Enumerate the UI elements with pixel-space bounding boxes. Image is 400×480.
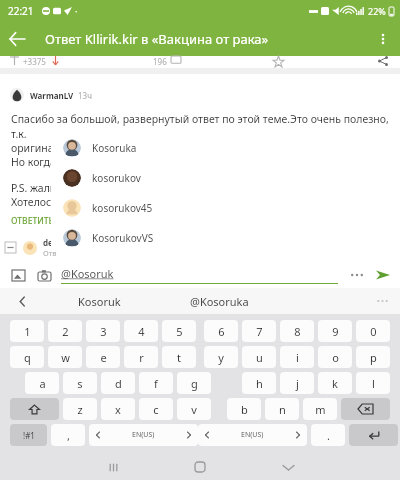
button[interactable]: l [356, 372, 390, 394]
button[interactable]: . [311, 424, 345, 446]
staticText: c [153, 402, 159, 417]
staticText: k [332, 376, 338, 391]
button[interactable]: p [356, 346, 390, 368]
button[interactable]: h [242, 372, 276, 394]
button[interactable]: Camera [34, 265, 54, 285]
button[interactable]: 1 [10, 320, 44, 342]
staticText: kosorukov45 [92, 201, 153, 215]
button[interactable]: m [303, 398, 337, 420]
staticText: d [115, 376, 122, 391]
staticText: Ответ Kllirik.kir в «Вакцина от рака» [45, 30, 366, 48]
button[interactable]: More [346, 264, 368, 286]
button[interactable]: v [177, 398, 211, 420]
staticText: Но когда [11, 155, 56, 169]
button[interactable]: Home [185, 454, 215, 480]
staticText: deril [43, 237, 62, 248]
button[interactable]: 5 [162, 320, 196, 342]
button[interactable]: Comments [153, 56, 181, 67]
staticText: P.S. жаль [11, 181, 56, 195]
button[interactable]: i [280, 346, 314, 368]
staticText: i [296, 350, 299, 365]
staticText: y [218, 350, 224, 365]
button[interactable]: r [124, 346, 158, 368]
button[interactable]: !#1 [10, 424, 47, 446]
staticText: v [191, 402, 197, 417]
staticText: 13ч [78, 90, 92, 101]
button[interactable]: j [280, 372, 314, 394]
button[interactable]: Enter [349, 424, 398, 446]
button[interactable]: 9 [318, 320, 352, 342]
staticText: оригинал думали". [11, 141, 294, 155]
button[interactable]: kosorukov45 [51, 193, 353, 223]
button[interactable]: b [227, 398, 261, 420]
button[interactable]: KosorukovVS [51, 223, 353, 252]
button[interactable]: a [25, 372, 59, 394]
button[interactable]: t [162, 346, 196, 368]
staticText: e [100, 350, 107, 365]
button[interactable]: 2 [48, 320, 82, 342]
staticText: . [327, 428, 330, 443]
staticText: Kosoruka [92, 141, 137, 155]
button[interactable]: 4 [124, 320, 158, 342]
staticText: EN(US) [241, 430, 264, 440]
button[interactable]: e [86, 346, 120, 368]
button[interactable]: w [48, 346, 82, 368]
button[interactable]: x [101, 398, 135, 420]
button[interactable]: More suggestions [364, 288, 400, 314]
button[interactable]: Back [0, 22, 34, 56]
button[interactable]: 7 [242, 320, 276, 342]
button[interactable]: u [242, 346, 276, 368]
staticText: Хотелось [11, 195, 57, 209]
button[interactable]: Kosoruk [44, 288, 154, 314]
button[interactable]: 0 [356, 320, 390, 342]
button[interactable]: Save [273, 56, 285, 68]
staticText: Отв [43, 248, 57, 258]
staticText: m [315, 402, 326, 417]
button[interactable]: s [63, 372, 97, 394]
button[interactable]: y [204, 346, 238, 368]
staticText: @Kosoruk [61, 266, 114, 281]
button[interactable]: Backspace [341, 398, 390, 420]
staticText: j [296, 376, 299, 391]
button[interactable]: f [139, 372, 173, 394]
button[interactable]: EN(US) [198, 424, 307, 446]
staticText: 7 [256, 324, 263, 339]
button[interactable]: EN(US) [89, 424, 198, 446]
staticText: kosorukov [92, 171, 141, 185]
staticText: b [241, 402, 248, 417]
button[interactable]: 3 [86, 320, 120, 342]
button[interactable]: 6 [204, 320, 238, 342]
staticText: a [39, 376, 46, 391]
button[interactable]: Rating [10, 56, 60, 67]
button[interactable]: kosorukov [51, 163, 353, 193]
button[interactable]: Hide keyboard [273, 454, 303, 480]
button[interactable]: @Kosoruka [154, 288, 284, 314]
staticText: 196 [153, 56, 167, 67]
button[interactable]: g [177, 372, 211, 394]
button[interactable]: Share [378, 56, 390, 68]
button[interactable]: Previous suggestions [0, 288, 44, 314]
staticText: !#1 [23, 430, 35, 441]
button[interactable]: c [139, 398, 173, 420]
button[interactable]: Attach image [8, 265, 28, 285]
button[interactable]: Shift [10, 398, 59, 420]
button[interactable]: ОТВЕТИТЬ [11, 215, 54, 227]
staticText: , [67, 428, 70, 443]
button[interactable]: q [10, 346, 44, 368]
button[interactable]: Recent apps [98, 454, 128, 480]
staticText: 0 [370, 324, 377, 339]
button[interactable]: o [318, 346, 352, 368]
button[interactable]: More options [366, 22, 400, 56]
staticText: Kosoruk [78, 294, 121, 309]
button[interactable]: z [63, 398, 97, 420]
button[interactable]: Send [371, 263, 395, 287]
button[interactable]: Kosoruka [51, 133, 353, 163]
button[interactable]: n [265, 398, 299, 420]
button[interactable]: , [51, 424, 85, 446]
button[interactable]: WarmanLV [30, 90, 74, 101]
staticText: t [177, 350, 181, 365]
button[interactable]: k [318, 372, 352, 394]
button[interactable]: 8 [280, 320, 314, 342]
staticText: r [139, 350, 144, 365]
button[interactable]: d [101, 372, 135, 394]
